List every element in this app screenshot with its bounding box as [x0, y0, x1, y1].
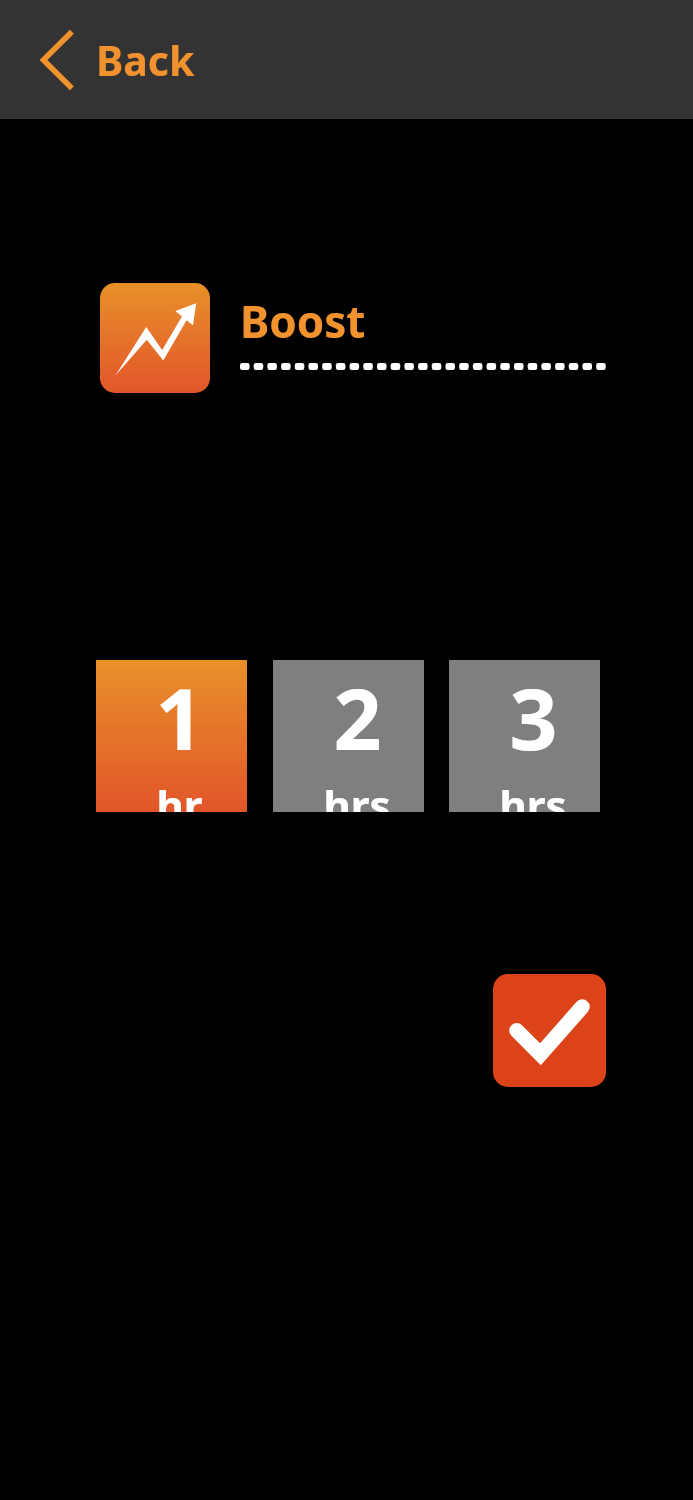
staticText: hr: [156, 776, 203, 812]
button[interactable]: Boost: [100, 283, 210, 393]
button[interactable]: 2: [273, 660, 424, 812]
staticText: hrs: [499, 776, 567, 812]
staticText: Boost: [240, 291, 366, 351]
button[interactable]: 3: [449, 660, 600, 812]
staticText: 3: [509, 660, 558, 774]
button[interactable]: Confirm: [493, 974, 606, 1087]
staticText: hrs: [323, 776, 391, 812]
staticText: 2: [333, 660, 382, 774]
button[interactable]: 1: [96, 660, 247, 812]
button[interactable]: Back: [0, 0, 693, 119]
staticText: 1: [155, 660, 204, 774]
staticText: Back: [96, 32, 195, 88]
